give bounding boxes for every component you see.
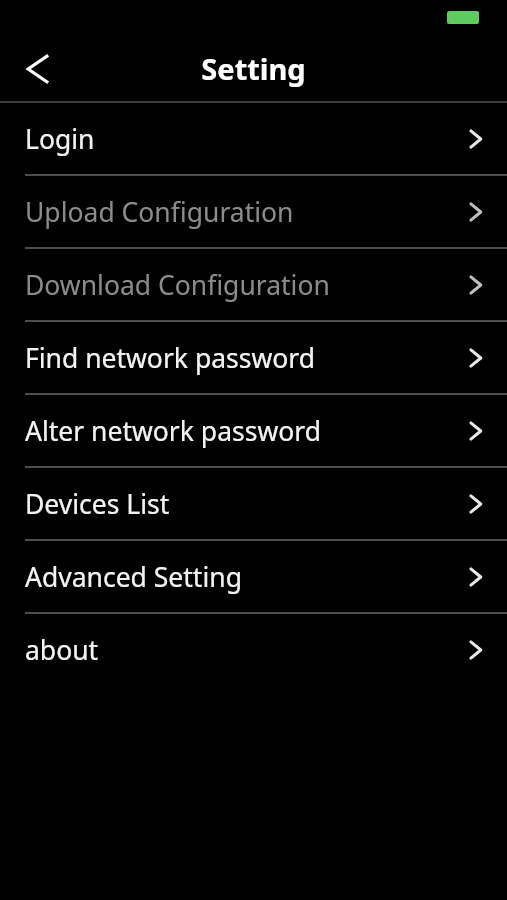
staticText: Download Configuration <box>25 267 468 303</box>
button[interactable]: Upload Configuration <box>0 176 507 247</box>
staticText: Find network password <box>25 340 468 376</box>
button[interactable]: Alter network password <box>0 395 507 466</box>
button[interactable]: Login <box>0 103 507 174</box>
button[interactable]: Back <box>0 36 74 101</box>
staticText: Setting <box>201 49 306 88</box>
staticText: Login <box>25 121 468 157</box>
button[interactable]: about <box>0 614 507 685</box>
staticText: Advanced Setting <box>25 559 468 595</box>
staticText: Alter network password <box>25 413 468 449</box>
button[interactable]: Advanced Setting <box>0 541 507 612</box>
staticText: Devices List <box>25 486 468 522</box>
button[interactable]: Devices List <box>0 468 507 539</box>
staticText: about <box>25 632 468 668</box>
button[interactable]: Download Configuration <box>0 249 507 320</box>
button[interactable]: Find network password <box>0 322 507 393</box>
staticText: Upload Configuration <box>25 194 468 230</box>
